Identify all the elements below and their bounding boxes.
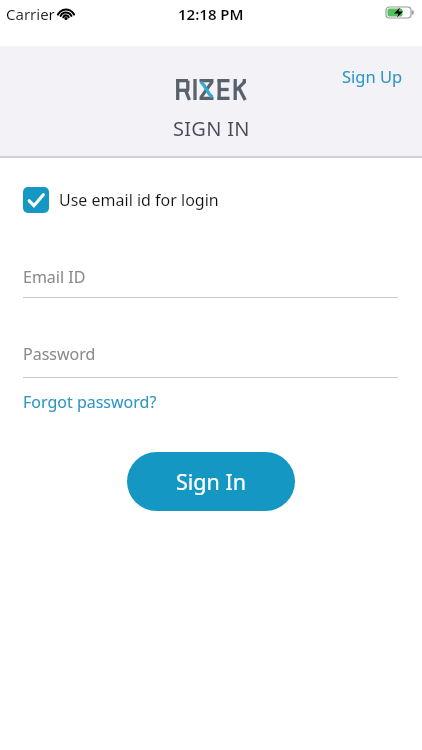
staticText: Sign In [176, 467, 247, 496]
staticText: 12:18 PM [178, 4, 244, 24]
staticText: Password [23, 343, 96, 365]
button[interactable]: Use email id for login [23, 187, 219, 213]
staticText: SIGN IN [173, 115, 250, 142]
staticText: Use email id for login [59, 189, 219, 211]
button[interactable]: Sign Up [342, 65, 403, 87]
staticText: Carrier [6, 4, 55, 24]
button[interactable]: Forgot password? [23, 391, 157, 413]
button[interactable]: Sign In [127, 452, 295, 511]
staticText: Email ID [23, 266, 86, 288]
